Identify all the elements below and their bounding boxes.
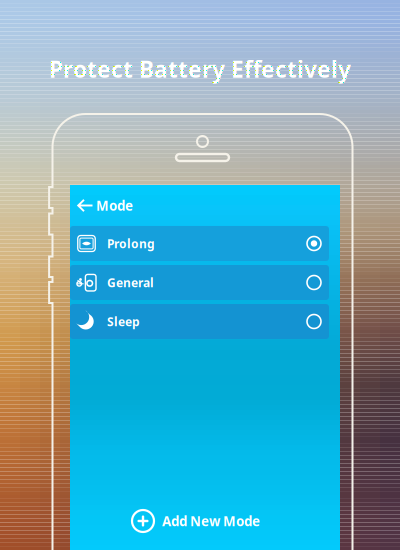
staticText: Add New Mode — [162, 512, 260, 530]
staticText: Sleep — [107, 313, 140, 329]
staticText: Protect Battery Effectively — [49, 54, 351, 84]
staticText: Prolong — [107, 235, 155, 251]
button[interactable]: Add New Mode — [70, 502, 340, 540]
button[interactable]: Prolong — [70, 226, 329, 261]
button[interactable]: Sleep — [70, 304, 329, 339]
button[interactable]: General — [70, 265, 329, 300]
staticText: Mode — [96, 197, 133, 214]
button[interactable]: Mode — [70, 185, 143, 225]
staticText: General — [107, 274, 154, 290]
